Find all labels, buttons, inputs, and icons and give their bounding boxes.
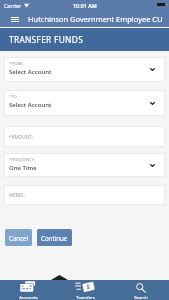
button[interactable]: Menu	[7, 13, 23, 25]
staticText: *TO:	[9, 94, 18, 99]
staticText: Search	[134, 294, 148, 300]
button[interactable]: Continue	[37, 229, 72, 246]
staticText: *FREQUENCY:	[9, 157, 36, 162]
staticText: *AMOUNT:	[9, 134, 33, 140]
button[interactable]: Transfers	[57, 280, 113, 300]
staticText: Select Account	[9, 101, 52, 109]
button[interactable]: Search	[113, 280, 169, 300]
staticText: Hutchinson Government Employee CU	[28, 14, 163, 24]
staticText: 10:01 AM	[73, 2, 97, 9]
staticText: Carrier	[4, 2, 22, 9]
staticText: Select Account	[9, 68, 52, 76]
staticText: Accounts	[19, 294, 38, 300]
staticText: Transfers	[76, 294, 95, 300]
button[interactable]: *TO:	[4, 90, 165, 116]
button[interactable]: Accounts	[0, 280, 57, 300]
staticText: MEMO:	[9, 192, 25, 198]
staticText: Continue	[41, 234, 68, 242]
button[interactable]: *FROM:	[4, 57, 165, 82]
button[interactable]: Cancel	[5, 229, 32, 246]
button[interactable]: *AMOUNT:	[4, 126, 165, 147]
staticText: TRANSFER FUNDS	[9, 34, 84, 45]
staticText: *FROM:	[9, 61, 24, 66]
staticText: Cancel	[9, 234, 29, 242]
staticText: One Time	[9, 164, 37, 172]
button[interactable]: *FREQUENCY:	[4, 153, 165, 177]
button[interactable]: MEMO:	[4, 185, 165, 205]
